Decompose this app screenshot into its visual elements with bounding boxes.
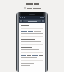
button[interactable] <box>24 3 41 5</box>
button[interactable] <box>21 31 43 34</box>
button[interactable] <box>21 55 43 58</box>
button[interactable]: Subtitle <box>24 7 41 9</box>
button[interactable] <box>21 63 43 66</box>
button[interactable]: Address bar <box>19 19 45 23</box>
button[interactable]: Address bar <box>16 12 48 72</box>
button[interactable] <box>21 39 43 42</box>
button[interactable] <box>21 47 43 50</box>
